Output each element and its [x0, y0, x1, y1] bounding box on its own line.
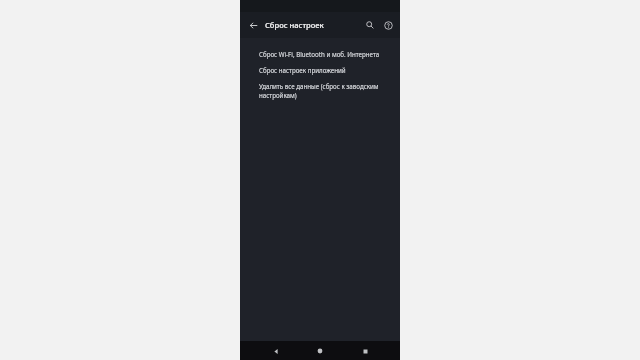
- button[interactable]: Назад: [244, 16, 262, 34]
- button[interactable]: Обзор: [356, 342, 374, 360]
- button[interactable]: Поиск: [361, 16, 379, 34]
- staticText: Сброс Wi-Fi, Bluetooth и моб. Интернета: [259, 50, 380, 58]
- staticText: Сброс настроек приложений: [259, 66, 346, 74]
- button[interactable]: Назад: [267, 342, 285, 360]
- button[interactable]: Сброс Wi-Fi, Bluetooth и моб. Интернета: [240, 46, 400, 62]
- button[interactable]: Удалить все данные (сброс к заводским на…: [240, 78, 400, 104]
- staticText: Сброс настроек: [265, 20, 324, 30]
- button[interactable]: Главный экран: [311, 342, 329, 360]
- button[interactable]: Справка: [379, 16, 397, 34]
- button[interactable]: Сброс настроек приложений: [240, 62, 400, 78]
- staticText: Удалить все данные (сброс к заводским на…: [259, 82, 390, 100]
